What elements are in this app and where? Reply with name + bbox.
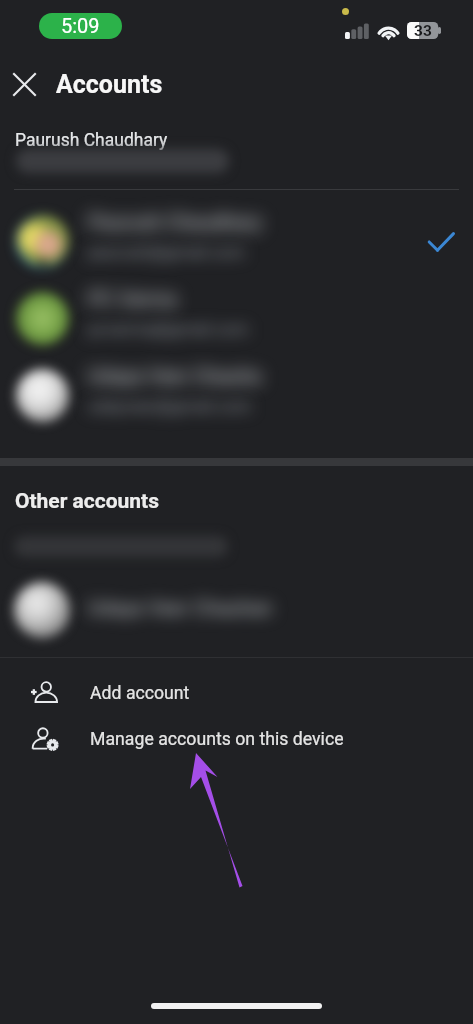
button[interactable] [0, 357, 473, 433]
staticText: PC Verma [88, 287, 177, 310]
staticText: Udaya Veer Chauha [88, 364, 262, 387]
staticText: paurush@gmail.com [88, 242, 245, 262]
staticText: Other accounts [15, 489, 159, 514]
button[interactable]: Manage accounts on this device [0, 715, 473, 763]
staticText: Accounts [56, 70, 163, 99]
button[interactable] [0, 578, 473, 642]
other: Selected account [425, 225, 457, 257]
staticText: Paurush Chaudhary [15, 130, 168, 151]
button[interactable]: Close [2, 62, 47, 107]
staticText: 5:09 [61, 14, 100, 37]
staticText: Manage accounts on this device [90, 729, 344, 750]
button[interactable]: Add account [0, 669, 473, 717]
staticText: Udaya Veer Chauhan [88, 596, 273, 619]
button[interactable] [0, 280, 473, 356]
staticText: pcverma@gmail.com [88, 319, 249, 339]
staticText: udayveer@gmail.com [88, 396, 252, 416]
staticText: 33 [414, 22, 432, 39]
staticText: Paurush Chaudhary [88, 210, 263, 233]
staticText: Add account [90, 683, 190, 704]
button[interactable] [0, 203, 473, 279]
